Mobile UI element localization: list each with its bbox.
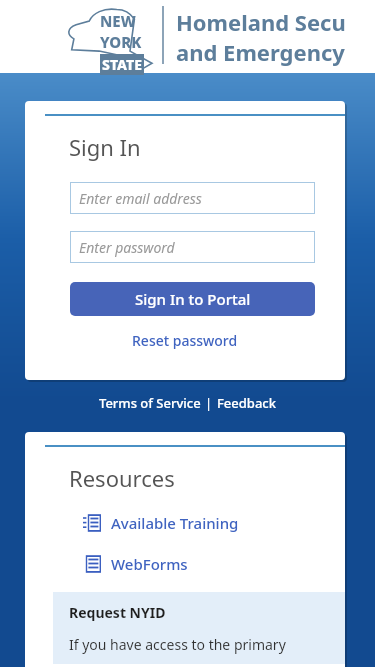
staticText: YORK — [100, 32, 142, 52]
staticText: Sign In to Portal — [135, 289, 251, 309]
staticText: Available Training — [111, 513, 239, 533]
staticText: Reset password — [132, 331, 238, 350]
button[interactable]: Enter email address — [70, 182, 315, 214]
button[interactable]: Available Training — [83, 513, 345, 533]
staticText: Terms of Service — [99, 394, 201, 412]
staticText: Enter password — [79, 238, 175, 257]
staticText: If you have access to the primary — [69, 635, 286, 654]
staticText: Feedback — [217, 394, 276, 412]
button[interactable]: WebForms — [83, 554, 345, 574]
staticText: WebForms — [111, 554, 188, 574]
staticText: Sign In — [69, 132, 141, 162]
button[interactable]: Reset password — [25, 331, 345, 350]
staticText: Homeland Secu — [176, 7, 346, 37]
button[interactable]: Enter password — [70, 231, 315, 263]
staticText: | — [205, 394, 213, 412]
button[interactable]: Feedback — [213, 390, 280, 416]
staticText: Resources — [69, 463, 175, 493]
other: New York State logo — [64, 5, 174, 69]
button[interactable]: Terms of Service — [95, 390, 205, 416]
staticText: STATE — [102, 55, 142, 74]
staticText: and Emergency — [176, 37, 345, 67]
staticText: Enter email address — [79, 189, 202, 208]
button[interactable]: Sign In to Portal — [70, 282, 315, 316]
staticText: NEW — [100, 11, 136, 31]
staticText: Request NYID — [69, 603, 166, 622]
